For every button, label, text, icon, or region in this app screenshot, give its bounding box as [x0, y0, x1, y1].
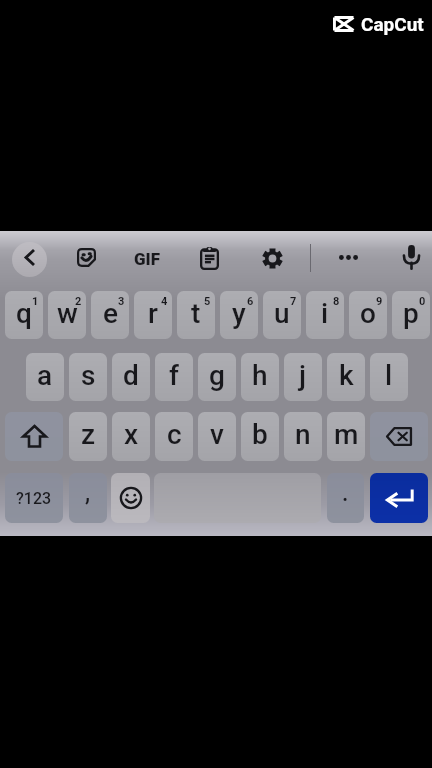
button[interactable]: n	[284, 412, 322, 461]
button[interactable]: j	[284, 353, 322, 401]
staticText: 5	[204, 295, 211, 308]
staticText: ?123	[16, 489, 52, 508]
staticText: m	[334, 418, 359, 451]
button[interactable]: s	[69, 353, 107, 401]
staticText: e	[103, 297, 118, 330]
button[interactable]: r	[134, 291, 172, 339]
staticText: f	[169, 359, 179, 392]
button[interactable]: u	[263, 291, 301, 339]
staticText: c	[167, 418, 182, 451]
staticText: CapCut	[361, 13, 424, 35]
button[interactable]: Clipboard	[200, 247, 219, 269]
button[interactable]: p	[392, 291, 430, 339]
staticText: p	[403, 297, 419, 330]
button[interactable]: e	[91, 291, 129, 339]
staticText: b	[252, 418, 268, 451]
staticText: s	[81, 359, 96, 392]
staticText: 7	[290, 295, 297, 308]
staticText: ,	[85, 480, 91, 507]
button[interactable]: g	[198, 353, 236, 401]
staticText: r	[148, 297, 158, 330]
staticText: 2	[75, 295, 82, 308]
staticText: x	[124, 418, 139, 451]
staticText: u	[274, 297, 290, 330]
button[interactable]: y	[220, 291, 258, 339]
button[interactable]: Voice input	[403, 245, 420, 269]
staticText: o	[360, 297, 376, 330]
button[interactable]: l	[370, 353, 408, 401]
staticText: d	[123, 359, 139, 392]
button[interactable]: w	[48, 291, 86, 339]
staticText: v	[210, 418, 224, 451]
button[interactable]: Enter	[370, 473, 428, 523]
button[interactable]: x	[112, 412, 150, 461]
button[interactable]: Period	[327, 473, 364, 523]
button[interactable]: a	[26, 353, 64, 401]
staticText: y	[232, 297, 246, 330]
staticText: g	[209, 359, 225, 392]
button[interactable]: Comma	[69, 473, 107, 523]
button[interactable]: d	[112, 353, 150, 401]
button[interactable]: More options	[339, 255, 358, 260]
staticText: z	[81, 418, 96, 451]
staticText: 4	[161, 295, 168, 308]
button[interactable]: Symbols	[5, 473, 63, 523]
button[interactable]: GIF	[131, 245, 163, 273]
button[interactable]: Backspace	[370, 412, 428, 461]
staticText: 8	[333, 295, 340, 308]
staticText: 9	[376, 295, 383, 308]
button[interactable]: Emoji	[111, 473, 150, 523]
staticText: n	[295, 418, 311, 451]
button[interactable]: Stickers	[77, 248, 96, 267]
staticText: q	[16, 297, 32, 330]
staticText: l	[385, 359, 393, 392]
staticText: a	[37, 359, 53, 392]
staticText: 1	[32, 295, 39, 308]
staticText: GIF	[134, 249, 161, 269]
button[interactable]: c	[155, 412, 193, 461]
button[interactable]: v	[198, 412, 236, 461]
staticText: t	[191, 297, 201, 330]
button[interactable]: Back	[12, 242, 47, 277]
staticText: k	[339, 359, 354, 392]
button[interactable]: q	[5, 291, 43, 339]
staticText: h	[252, 359, 268, 392]
button[interactable]: Space	[154, 473, 321, 523]
staticText: 3	[118, 295, 125, 308]
button[interactable]: h	[241, 353, 279, 401]
staticText: j	[299, 359, 307, 392]
button[interactable]: f	[155, 353, 193, 401]
staticText: i	[321, 297, 329, 330]
staticText: w	[57, 297, 78, 330]
button[interactable]: z	[69, 412, 107, 461]
staticText: 0	[419, 295, 426, 308]
button[interactable]: i	[306, 291, 344, 339]
button[interactable]: m	[327, 412, 365, 461]
button[interactable]: o	[349, 291, 387, 339]
button[interactable]: b	[241, 412, 279, 461]
button[interactable]: Shift	[5, 412, 63, 461]
button[interactable]: t	[177, 291, 215, 339]
staticText: .	[342, 480, 349, 507]
button[interactable]: k	[327, 353, 365, 401]
button[interactable]: Settings	[262, 248, 283, 269]
staticText: 6	[247, 295, 254, 308]
